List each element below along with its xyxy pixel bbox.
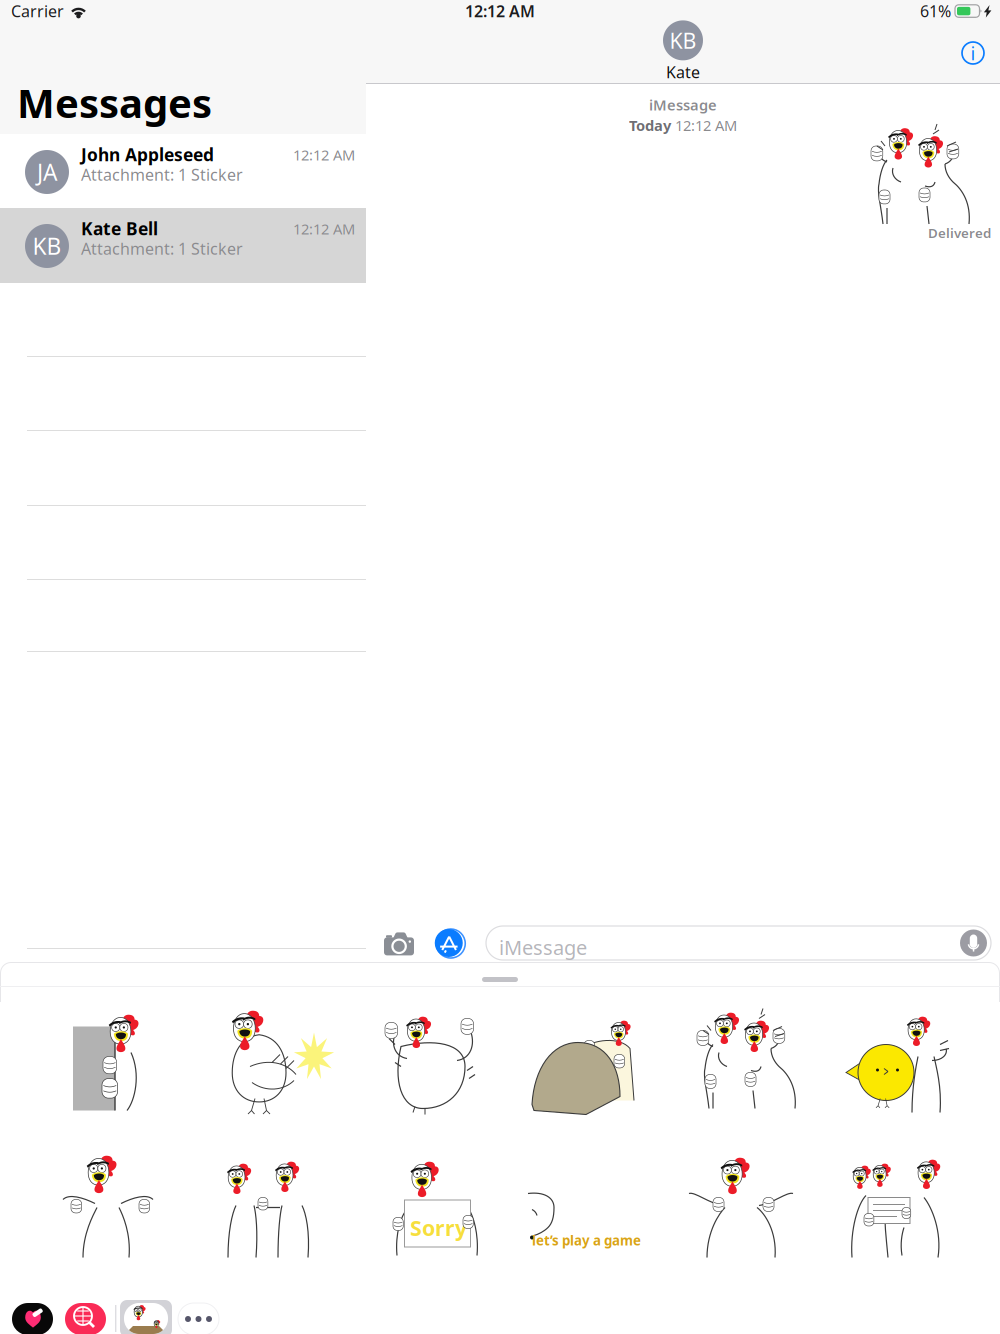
staticText: 12:12 AM — [293, 219, 355, 238]
button[interactable]: Recent apps — [12, 1303, 53, 1334]
button[interactable]: Sticker — [828, 987, 985, 1134]
staticText: John Appleseed — [81, 143, 214, 166]
button[interactable]: Sticker — [43, 987, 200, 1134]
staticText: Delivered — [928, 224, 991, 242]
button[interactable]: Images — [65, 1303, 106, 1334]
staticText: KB — [669, 26, 696, 54]
staticText: 61% — [920, 0, 951, 22]
staticText: KB — [32, 231, 61, 261]
staticText: Today — [629, 115, 671, 135]
button[interactable]: KB — [623, 20, 743, 82]
button[interactable]: Camera — [384, 932, 414, 956]
staticText: Kate — [666, 61, 700, 83]
button[interactable]: Sticker — [514, 1134, 671, 1281]
button[interactable]: Sticker — [828, 1134, 985, 1281]
staticText: iMessage — [649, 95, 717, 114]
button[interactable]: Details — [951, 31, 995, 75]
staticText: i — [970, 41, 975, 65]
staticText: iMessage — [499, 934, 587, 961]
staticText: Sorry — [410, 1213, 467, 1242]
staticText: Attachment: 1 Sticker — [81, 238, 243, 259]
button[interactable]: Sticker — [357, 987, 514, 1134]
button[interactable]: App Store — [434, 929, 464, 958]
button[interactable]: JA — [0, 134, 366, 209]
staticText: 12:12 AM — [465, 0, 535, 22]
button[interactable]: Sticker — [200, 1134, 357, 1281]
staticText: Messages — [17, 76, 212, 129]
staticText: Carrier — [11, 0, 64, 22]
button[interactable]: Sticker from Kate — [862, 126, 986, 226]
staticText: JA — [37, 157, 57, 187]
button[interactable]: Sticker — [43, 1134, 200, 1281]
staticText: Kate Bell — [81, 217, 158, 240]
button[interactable]: KB — [0, 208, 366, 283]
staticText: Attachment: 1 Sticker — [81, 164, 243, 185]
button[interactable]: Chicken sticker pack — [120, 1300, 172, 1334]
button[interactable]: Sticker — [671, 987, 828, 1134]
staticText: 12:12 AM — [675, 115, 737, 135]
button[interactable]: iMessage text field — [486, 926, 991, 960]
button[interactable]: More apps — [178, 1303, 219, 1334]
button[interactable]: Sticker — [514, 987, 671, 1134]
staticText: let’s play a game — [532, 1231, 641, 1249]
button[interactable]: Sticker — [200, 987, 357, 1134]
button[interactable]: Sticker — [671, 1134, 828, 1281]
button[interactable]: Sticker — [357, 1134, 514, 1281]
staticText: 12:12 AM — [293, 145, 355, 164]
